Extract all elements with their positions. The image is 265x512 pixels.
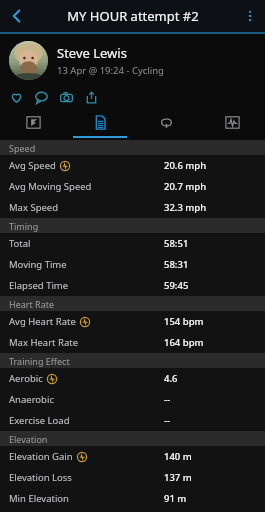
button[interactable]: Elapsed Time [0,275,265,296]
button[interactable]: Elevation Gain [0,446,265,467]
staticText: Min Elevation [9,492,69,505]
staticText: 164 bpm [164,336,204,349]
staticText: Training Effect [9,355,70,367]
staticText: Total [9,237,31,250]
staticText: Heart Rate [9,298,55,310]
button[interactable]: Photos [54,86,79,108]
button[interactable]: Steve Lewis [0,34,265,86]
button[interactable]: Aerobic [0,368,265,389]
button[interactable]: Comment [29,86,54,108]
button[interactable]: Min Elevation [0,488,265,509]
button[interactable]: Like [4,86,29,108]
staticText: Anaerobic [9,393,54,406]
button[interactable]: Exercise Load [0,410,265,431]
button[interactable]: Map [0,108,67,136]
staticText: Max Speed [9,201,59,214]
button[interactable]: Total [0,233,265,254]
staticText: Aerobic [9,372,43,385]
staticText: 20.6 mph [164,159,207,172]
button[interactable]: Avg Speed [0,155,265,176]
staticText: Avg Heart Rate [9,315,76,328]
staticText: 4.6 [164,372,178,385]
button[interactable]: Avg Heart Rate [0,311,265,332]
staticText: 91 m [164,492,187,505]
staticText: 58:31 [164,258,189,271]
staticText: Exercise Load [9,414,70,427]
button[interactable]: Moving Time [0,254,265,275]
button[interactable]: Charts [199,108,265,136]
staticText: Elevation Loss [9,471,72,484]
staticText: 140 m [164,450,192,463]
button[interactable]: Avg Moving Speed [0,176,265,197]
button[interactable]: More options [235,1,265,31]
button[interactable]: Max Heart Rate [0,332,265,353]
staticText: Avg Speed [9,159,56,172]
staticText: Elapsed Time [9,279,69,292]
button[interactable]: Elevation Loss [0,467,265,488]
staticText: 58:51 [164,237,189,250]
staticText: Max Heart Rate [9,336,79,349]
staticText: Timing [9,220,39,232]
staticText: 32.3 mph [164,201,207,214]
staticText: MY HOUR attempt #2 [67,7,199,25]
button[interactable]: Share [79,86,104,108]
staticText: 154 bpm [164,315,204,328]
staticText: 137 m [164,471,192,484]
button[interactable]: Anaerobic [0,389,265,410]
button[interactable]: Max Speed [0,197,265,218]
staticText: -- [164,393,171,406]
button[interactable]: Laps [133,108,199,136]
staticText: 13 Apr @ 19:24 - Cycling [57,64,164,77]
staticText: Elevation [9,433,48,445]
staticText: Moving Time [9,258,67,271]
staticText: -- [164,414,171,427]
staticText: Steve Lewis [57,44,127,62]
button[interactable]: Back [0,0,34,32]
staticText: 59:45 [164,279,189,292]
staticText: 20.7 mph [164,180,207,193]
button[interactable]: Details [67,108,133,136]
staticText: Elevation Gain [9,450,73,463]
staticText: Speed [9,142,36,154]
staticText: Avg Moving Speed [9,180,92,193]
